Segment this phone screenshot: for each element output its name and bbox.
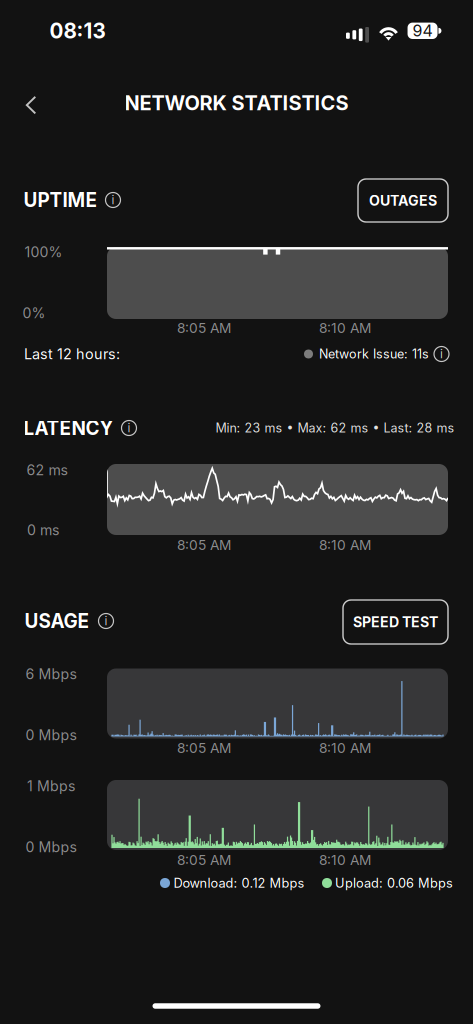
staticText: 0%	[22, 304, 45, 321]
staticText: 100%	[24, 243, 62, 260]
staticText: Network Issue: 11s	[319, 346, 429, 362]
staticText: Min: 23 ms • Max: 62 ms • Last: 28 ms	[215, 420, 454, 436]
staticText: 8:05 AM	[177, 320, 231, 336]
staticText: Upload: 0.06 Mbps	[335, 875, 453, 891]
button[interactable]: SPEED TEST	[343, 600, 448, 644]
staticText: 1 Mbps	[27, 777, 75, 794]
staticText: 0 Mbps	[25, 838, 76, 855]
staticText: LATENCY	[23, 416, 113, 439]
staticText: i	[440, 347, 443, 361]
button[interactable]: OUTAGES	[358, 179, 448, 222]
staticText: 62 ms	[26, 461, 67, 478]
staticText: 8:10 AM	[319, 740, 371, 756]
button[interactable]: Back	[9, 83, 53, 127]
staticText: NETWORK STATISTICS	[124, 91, 348, 115]
staticText: 94	[413, 21, 433, 40]
staticText: 8:05 AM	[177, 537, 231, 553]
staticText: Download: 0.12 Mbps	[173, 875, 304, 891]
staticText: SPEED TEST	[353, 613, 438, 630]
staticText: 08:13	[49, 18, 105, 43]
staticText: Last 12 hours:	[24, 345, 120, 363]
staticText: 8:05 AM	[177, 740, 231, 756]
staticText: 6 Mbps	[25, 665, 76, 682]
staticText: 8:10 AM	[319, 320, 371, 336]
staticText: i	[127, 421, 130, 435]
staticText: 0 Mbps	[25, 726, 76, 743]
staticText: 8:10 AM	[319, 852, 371, 868]
staticText: i	[111, 193, 114, 207]
staticText: OUTAGES	[369, 192, 437, 209]
staticText: i	[104, 614, 107, 628]
staticText: USAGE	[24, 609, 89, 632]
staticText: 8:05 AM	[177, 852, 231, 868]
staticText: UPTIME	[23, 188, 97, 211]
staticText: 0 ms	[27, 521, 59, 538]
staticText: 8:10 AM	[319, 537, 371, 553]
